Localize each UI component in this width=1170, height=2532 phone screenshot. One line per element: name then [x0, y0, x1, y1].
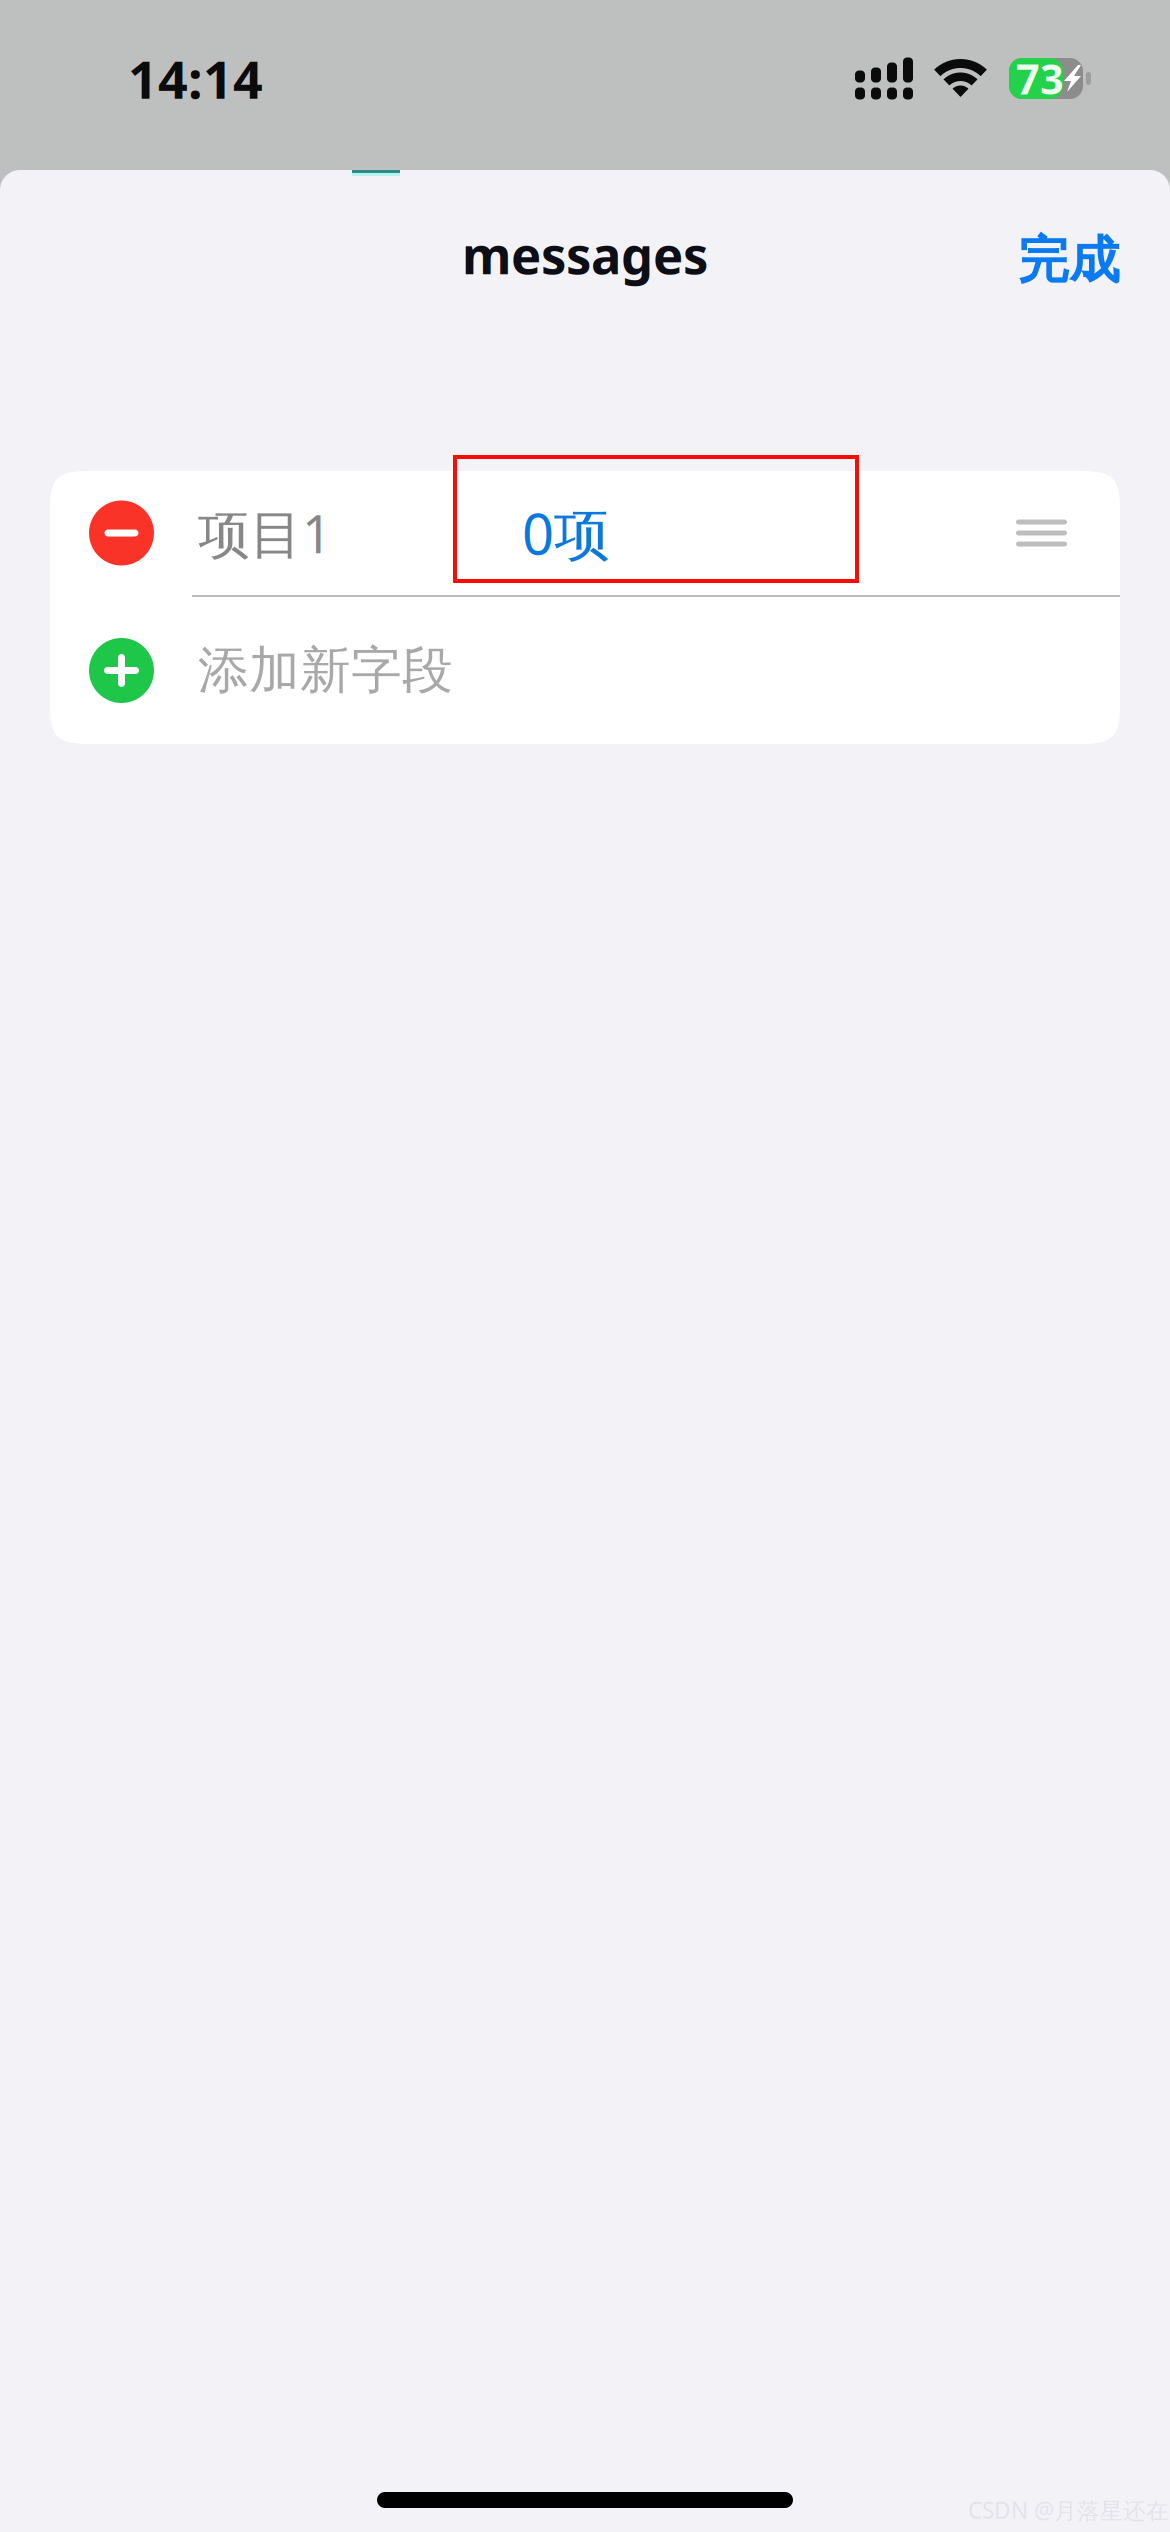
- staticText: messages: [462, 221, 708, 288]
- staticText: 完成: [1018, 229, 1120, 292]
- staticText: 73: [1016, 51, 1064, 106]
- button[interactable]: 添加新字段: [50, 597, 1120, 744]
- staticText: 添加新字段: [198, 639, 453, 702]
- staticText: 0项: [522, 496, 610, 570]
- button[interactable]: 项目1: [50, 471, 1120, 595]
- staticText: 14:14: [128, 44, 263, 113]
- button[interactable]: 完成: [1006, 201, 1132, 308]
- staticText: CSDN @月落星还在: [968, 2495, 1169, 2525]
- staticText: 项目1: [198, 498, 332, 568]
